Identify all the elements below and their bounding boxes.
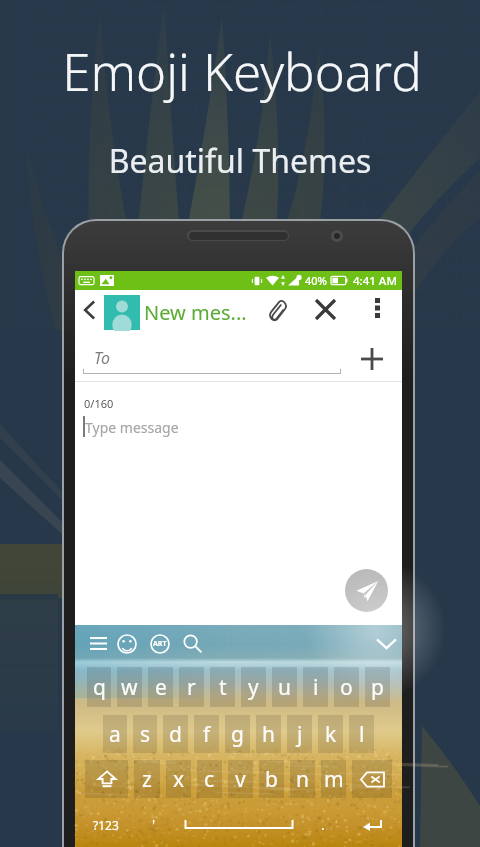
button[interactable]: ' <box>136 802 172 847</box>
button[interactable]: v <box>228 760 253 798</box>
button[interactable]: Enter <box>341 802 402 847</box>
staticText: Type message <box>85 418 179 437</box>
button[interactable]: Close <box>310 294 340 324</box>
button[interactable]: h <box>256 715 281 753</box>
staticText: ' <box>152 815 156 834</box>
button[interactable]: Menu <box>86 631 111 656</box>
button[interactable]: l <box>349 715 374 753</box>
staticText: l <box>359 720 365 749</box>
staticText: f <box>203 720 211 749</box>
staticText: Emoji Keyboard <box>2 36 480 105</box>
staticText: 40% <box>305 273 327 288</box>
button[interactable]: Send <box>345 569 388 612</box>
button[interactable]: m <box>321 760 346 798</box>
staticText: h <box>262 720 275 749</box>
button[interactable]: . <box>305 802 341 847</box>
button[interactable]: x <box>166 760 191 798</box>
button[interactable]: q <box>87 667 111 707</box>
staticText: w <box>121 673 138 702</box>
button[interactable]: Emoji <box>113 630 140 657</box>
staticText: . <box>321 815 325 834</box>
button[interactable]: b <box>259 760 284 798</box>
button[interactable]: t <box>210 667 235 707</box>
button[interactable]: Backspace <box>352 760 392 798</box>
staticText: b <box>265 765 278 794</box>
button[interactable]: p <box>365 667 390 707</box>
staticText: p <box>371 673 384 702</box>
button[interactable]: c <box>197 760 222 798</box>
staticText: z <box>142 765 152 794</box>
button[interactable]: s <box>133 715 157 753</box>
staticText: d <box>169 720 182 749</box>
button[interactable]: e <box>148 667 173 707</box>
button[interactable]: g <box>225 715 250 753</box>
button[interactable]: Attach <box>261 294 291 324</box>
button[interactable]: Back <box>76 293 102 327</box>
staticText: To <box>94 347 110 369</box>
staticText: m <box>324 765 344 794</box>
button[interactable]: a <box>103 715 127 753</box>
button[interactable]: i <box>303 667 328 707</box>
staticText: q <box>93 673 106 702</box>
button[interactable]: n <box>290 760 315 798</box>
staticText: x <box>173 765 185 794</box>
staticText: t <box>219 673 227 702</box>
staticText: 0/160 <box>84 396 114 411</box>
button[interactable]: Search <box>179 630 206 657</box>
button[interactable]: Art <box>146 630 173 657</box>
staticText: ?123 <box>93 817 119 833</box>
button[interactable]: Shift <box>85 760 128 798</box>
staticText: k <box>325 720 337 749</box>
staticText: c <box>204 765 215 794</box>
button[interactable]: r <box>179 667 204 707</box>
staticText: y <box>248 673 259 702</box>
button[interactable]: y <box>241 667 266 707</box>
staticText: n <box>296 765 309 794</box>
staticText: New mes... <box>144 299 247 326</box>
staticText: ART <box>153 639 167 649</box>
staticText: u <box>278 673 291 702</box>
staticText: r <box>187 673 196 702</box>
button[interactable]: u <box>272 667 297 707</box>
button[interactable]: Space <box>172 802 305 847</box>
staticText: Beautiful Themes <box>0 139 480 183</box>
button[interactable]: Add recipient <box>356 343 388 375</box>
button[interactable]: w <box>117 667 142 707</box>
button[interactable]: o <box>334 667 359 707</box>
button[interactable]: k <box>318 715 343 753</box>
button[interactable]: f <box>194 715 219 753</box>
button[interactable]: j <box>287 715 312 753</box>
staticText: o <box>340 673 353 702</box>
staticText: a <box>109 720 121 749</box>
staticText: v <box>235 765 246 794</box>
button[interactable]: ?123 <box>75 802 136 847</box>
staticText: g <box>231 720 244 749</box>
staticText: 4:41 AM <box>353 273 397 289</box>
button[interactable]: More options <box>363 294 391 322</box>
staticText: e <box>155 673 167 702</box>
staticText: i <box>313 673 319 702</box>
button[interactable]: d <box>163 715 188 753</box>
button[interactable]: Hide keyboard <box>372 629 400 657</box>
button[interactable]: z <box>134 760 160 798</box>
staticText: s <box>140 720 151 749</box>
staticText: j <box>297 720 303 749</box>
